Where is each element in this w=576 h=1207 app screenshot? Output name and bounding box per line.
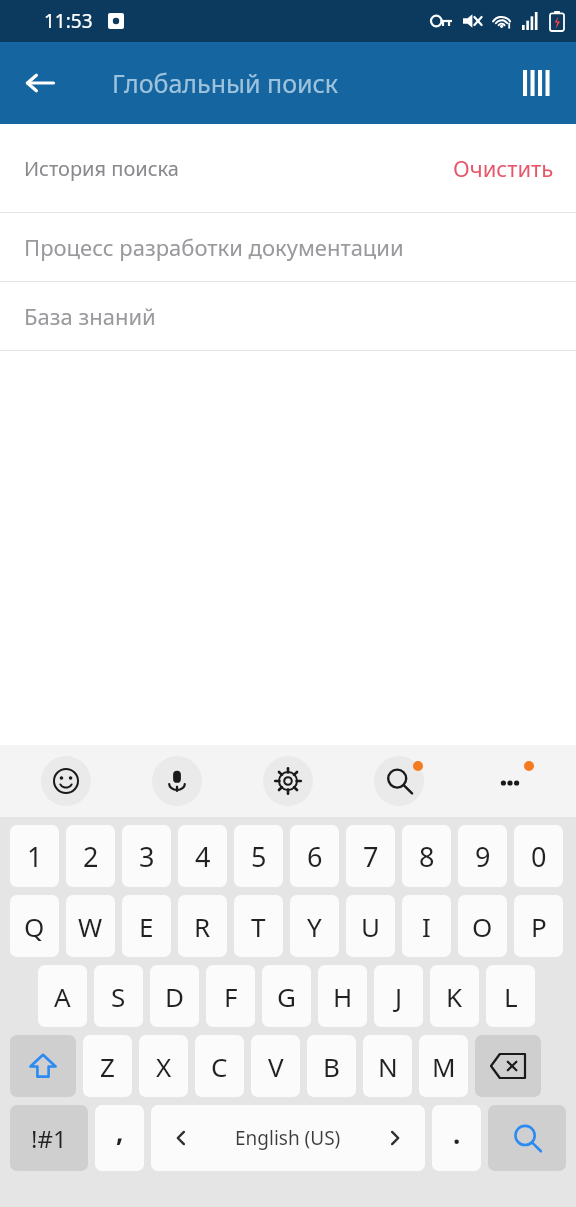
button[interactable]: Space, English (US) (151, 1105, 425, 1171)
button[interactable]: Voice input (151, 755, 203, 807)
staticText: 4 (195, 838, 211, 875)
button[interactable]: !#1 (10, 1105, 88, 1171)
staticText: 0 (531, 838, 547, 875)
staticText: Y (307, 909, 322, 944)
button[interactable]: 6 (290, 825, 339, 887)
button[interactable]: O (458, 895, 507, 957)
staticText: L (504, 979, 518, 1014)
button[interactable]: 3 (122, 825, 171, 887)
staticText: 5 (251, 838, 267, 875)
button[interactable]: A (38, 965, 87, 1027)
button[interactable]: Keyboard settings (262, 755, 314, 807)
button[interactable]: V (251, 1035, 300, 1097)
button[interactable]: I (402, 895, 451, 957)
button[interactable]: Backspace (475, 1035, 541, 1097)
staticText: P (531, 909, 547, 944)
button[interactable]: История поиска (0, 124, 576, 212)
staticText: 7 (363, 838, 379, 875)
button[interactable]: M (419, 1035, 468, 1097)
staticText: A (54, 979, 71, 1014)
button[interactable]: Z (83, 1035, 132, 1097)
staticText: Очистить (453, 153, 554, 183)
staticText: !#1 (31, 1122, 67, 1155)
staticText: U (361, 909, 381, 944)
staticText: База знаний (24, 301, 156, 331)
button[interactable]: R (178, 895, 227, 957)
button[interactable]: Scan barcode (510, 55, 566, 111)
button[interactable]: 7 (346, 825, 395, 887)
button[interactable]: 1 (10, 825, 59, 887)
staticText: 8 (419, 838, 435, 875)
button[interactable]: D (150, 965, 199, 1027)
button[interactable]: Shift (10, 1035, 76, 1097)
staticText: 1 (27, 838, 43, 875)
staticText: 6 (307, 838, 323, 875)
staticText: Q (24, 909, 45, 944)
button[interactable]: Процесс разработки документации (0, 213, 576, 281)
staticText: Глобальный поиск (112, 66, 339, 100)
button[interactable]: 8 (402, 825, 451, 887)
button[interactable]: S (94, 965, 143, 1027)
button[interactable]: 5 (234, 825, 283, 887)
button[interactable]: U (346, 895, 395, 957)
button[interactable]: L (486, 965, 535, 1027)
staticText: N (378, 1049, 398, 1084)
staticText: C (211, 1049, 228, 1084)
staticText: История поиска (24, 155, 179, 182)
button[interactable]: B (307, 1035, 356, 1097)
button[interactable]: , (95, 1105, 144, 1171)
staticText: I (422, 909, 431, 944)
staticText: , (116, 1114, 124, 1149)
button[interactable]: Search (488, 1105, 566, 1171)
button[interactable]: 2 (66, 825, 115, 887)
staticText: Процесс разработки документации (24, 232, 404, 262)
button[interactable]: E (122, 895, 171, 957)
button[interactable]: W (66, 895, 115, 957)
button[interactable]: . (432, 1105, 481, 1171)
button[interactable]: P (514, 895, 563, 957)
button[interactable]: X (139, 1035, 188, 1097)
button[interactable]: J (374, 965, 423, 1027)
staticText: M (432, 1049, 456, 1084)
button[interactable]: More options (484, 755, 536, 807)
staticText: R (194, 909, 211, 944)
staticText: 3 (139, 838, 155, 875)
staticText: G (277, 979, 296, 1014)
button[interactable]: Emoji (40, 755, 92, 807)
staticText: F (224, 979, 238, 1014)
staticText: H (333, 979, 353, 1014)
staticText: Z (100, 1049, 115, 1084)
button[interactable]: H (318, 965, 367, 1027)
staticText: J (395, 979, 403, 1014)
staticText: T (251, 909, 266, 944)
button[interactable]: Очистить (431, 141, 576, 195)
staticText: . (453, 1116, 461, 1151)
staticText: 9 (475, 838, 491, 875)
button[interactable]: N (363, 1035, 412, 1097)
staticText: English (US) (235, 1125, 341, 1151)
button[interactable]: Y (290, 895, 339, 957)
button[interactable]: Search (373, 755, 425, 807)
button[interactable]: 0 (514, 825, 563, 887)
staticText: X (156, 1049, 172, 1084)
button[interactable]: F (206, 965, 255, 1027)
button[interactable]: База знаний (0, 282, 576, 350)
staticText: B (323, 1049, 340, 1084)
button[interactable]: 9 (458, 825, 507, 887)
staticText: 11:53 (44, 8, 93, 34)
staticText: 2 (83, 838, 99, 875)
staticText: W (78, 909, 103, 944)
button[interactable]: T (234, 895, 283, 957)
staticText: E (139, 909, 154, 944)
button[interactable]: G (262, 965, 311, 1027)
staticText: O (472, 909, 493, 944)
staticText: S (111, 979, 126, 1014)
button[interactable]: Q (10, 895, 59, 957)
staticText: K (446, 979, 463, 1014)
button[interactable]: 4 (178, 825, 227, 887)
button[interactable]: C (195, 1035, 244, 1097)
staticText: V (268, 1049, 284, 1084)
button[interactable]: Back (12, 55, 68, 111)
staticText: D (165, 979, 184, 1014)
button[interactable]: K (430, 965, 479, 1027)
